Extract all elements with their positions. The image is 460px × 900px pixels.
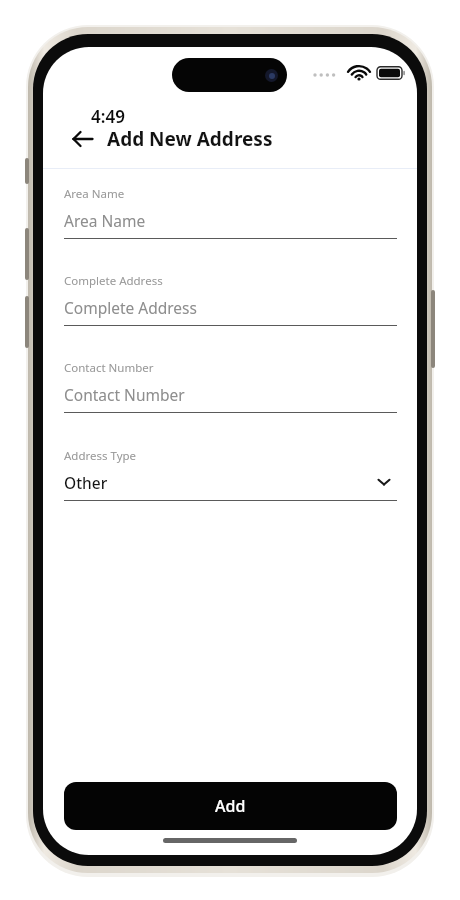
staticText: Area Name xyxy=(64,210,146,231)
staticText: Other xyxy=(64,472,108,493)
staticText: Contact Number xyxy=(64,384,185,405)
button[interactable]: Address Type xyxy=(64,448,397,510)
button[interactable]: Complete Address xyxy=(64,273,397,335)
staticText: 4:49 xyxy=(91,105,125,128)
staticText: Complete Address xyxy=(64,273,163,289)
staticText: Complete Address xyxy=(64,297,197,318)
button[interactable]: Back xyxy=(61,117,105,161)
staticText: Add New Address xyxy=(107,126,273,152)
staticText: Add xyxy=(215,795,246,817)
button[interactable]: Add xyxy=(64,782,397,830)
staticText: Contact Number xyxy=(64,360,154,376)
staticText: Area Name xyxy=(64,186,125,202)
button[interactable]: Area Name xyxy=(64,186,397,248)
staticText: Address Type xyxy=(64,448,137,464)
button[interactable]: Contact Number xyxy=(64,360,397,422)
